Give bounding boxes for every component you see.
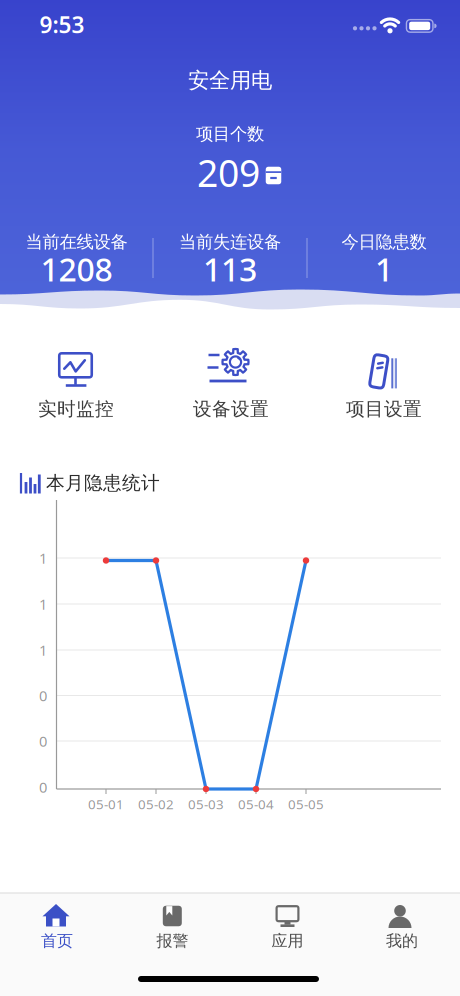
staticText: 当前在线设备 [25, 231, 127, 253]
staticText: 0 [39, 731, 47, 751]
staticText: 本月隐患统计 [46, 471, 160, 494]
button[interactable]: 实时监控 [11, 343, 141, 435]
staticText: 安全用电 [188, 67, 272, 94]
staticText: 05-01 [88, 795, 124, 813]
button[interactable]: 项目设置 [319, 343, 449, 435]
staticText: 05-03 [188, 795, 224, 813]
button[interactable]: 我的 [345, 896, 460, 958]
staticText: 今日隐患数 [341, 231, 426, 253]
staticText: 1208 [40, 248, 112, 290]
staticText: 05-04 [238, 795, 274, 813]
button[interactable]: 设备设置 [165, 343, 295, 435]
staticText: 应用 [271, 931, 303, 951]
staticText: 当前失连设备 [179, 231, 281, 253]
staticText: 报警 [156, 931, 188, 951]
staticText: 1 [39, 548, 47, 568]
staticText: 113 [203, 248, 257, 290]
staticText: 1 [39, 594, 47, 614]
staticText: 实时监控 [38, 397, 114, 420]
staticText: 0 [39, 777, 47, 797]
button[interactable]: 报警 [115, 896, 230, 958]
staticText: 1 [375, 248, 393, 290]
staticText: 首页 [41, 931, 73, 951]
staticText: 209 [197, 148, 260, 197]
staticText: 05-05 [288, 795, 324, 813]
button[interactable]: 首页 [0, 896, 115, 958]
staticText: 9:53 [39, 9, 84, 39]
staticText: 05-02 [138, 795, 174, 813]
staticText: 设备设置 [193, 397, 269, 420]
staticText: 0 [39, 686, 47, 705]
staticText: 1 [39, 640, 47, 660]
staticText: 项目设置 [346, 397, 422, 420]
staticText: 我的 [386, 931, 418, 951]
button[interactable]: 应用 [230, 896, 345, 958]
staticText: 项目个数 [196, 123, 264, 145]
